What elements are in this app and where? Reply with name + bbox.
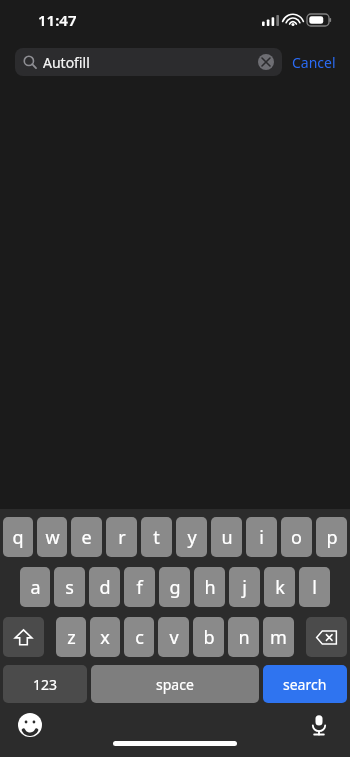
- staticText: p: [326, 525, 338, 550]
- button[interactable]: Backspace: [306, 617, 347, 657]
- staticText: q: [12, 525, 24, 550]
- button[interactable]: o: [281, 517, 312, 557]
- button[interactable]: s: [54, 567, 85, 607]
- button[interactable]: y: [176, 517, 207, 557]
- staticText: a: [30, 575, 41, 600]
- staticText: c: [135, 625, 144, 650]
- staticText: g: [169, 575, 181, 600]
- button[interactable]: Autofill: [15, 48, 282, 76]
- button[interactable]: r: [106, 517, 137, 557]
- button[interactable]: space: [91, 665, 259, 703]
- staticText: u: [221, 525, 233, 550]
- staticText: l: [312, 575, 317, 600]
- staticText: z: [67, 625, 76, 650]
- button[interactable]: search: [263, 665, 347, 703]
- button[interactable]: p: [316, 517, 347, 557]
- staticText: y: [187, 525, 197, 550]
- button[interactable]: b: [193, 617, 224, 657]
- button[interactable]: m: [263, 617, 294, 657]
- button[interactable]: w: [37, 517, 67, 557]
- staticText: space: [156, 675, 194, 694]
- button[interactable]: Dictate: [308, 714, 330, 736]
- staticText: f: [136, 575, 143, 600]
- button[interactable]: 123: [3, 665, 87, 703]
- staticText: 123: [33, 675, 58, 694]
- staticText: d: [99, 575, 111, 600]
- staticText: v: [169, 625, 179, 650]
- staticText: t: [153, 525, 160, 550]
- button[interactable]: l: [299, 567, 330, 607]
- button[interactable]: t: [141, 517, 172, 557]
- staticText: n: [238, 625, 250, 650]
- staticText: k: [275, 575, 285, 600]
- button[interactable]: Clear text: [258, 54, 274, 70]
- button[interactable]: z: [56, 617, 86, 657]
- staticText: o: [291, 525, 302, 550]
- button[interactable]: v: [158, 617, 189, 657]
- button[interactable]: h: [194, 567, 225, 607]
- button[interactable]: k: [264, 567, 295, 607]
- staticText: r: [118, 525, 126, 550]
- button[interactable]: x: [90, 617, 120, 657]
- staticText: s: [65, 575, 74, 600]
- staticText: m: [270, 625, 287, 650]
- button[interactable]: c: [124, 617, 154, 657]
- staticText: w: [45, 525, 60, 550]
- button[interactable]: n: [228, 617, 259, 657]
- staticText: Cancel: [292, 53, 336, 72]
- button[interactable]: g: [159, 567, 190, 607]
- staticText: i: [259, 525, 264, 550]
- staticText: j: [242, 575, 247, 600]
- button[interactable]: i: [246, 517, 277, 557]
- staticText: 11:47: [38, 10, 77, 30]
- button[interactable]: e: [71, 517, 102, 557]
- button[interactable]: Cancel: [282, 48, 336, 76]
- staticText: Autofill: [43, 53, 258, 72]
- button[interactable]: u: [211, 517, 242, 557]
- staticText: x: [100, 625, 110, 650]
- button[interactable]: j: [229, 567, 260, 607]
- staticText: h: [204, 575, 216, 600]
- button[interactable]: q: [3, 517, 33, 557]
- button[interactable]: Shift: [3, 617, 44, 657]
- staticText: b: [203, 625, 215, 650]
- button[interactable]: a: [20, 567, 50, 607]
- button[interactable]: f: [124, 567, 155, 607]
- staticText: e: [81, 525, 92, 550]
- staticText: search: [283, 675, 327, 694]
- button[interactable]: Emoji: [18, 713, 42, 737]
- button[interactable]: d: [89, 567, 120, 607]
